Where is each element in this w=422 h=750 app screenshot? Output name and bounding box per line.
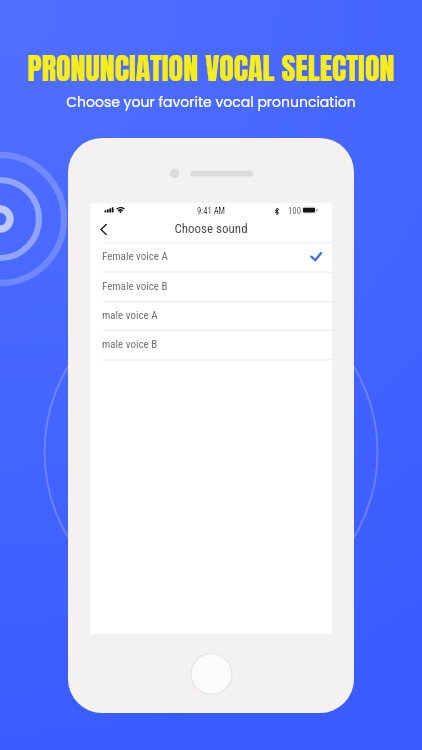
- button[interactable]: Female voice A: [90, 242, 332, 271]
- staticText: Female voice A: [102, 250, 168, 263]
- staticText: 9:41 AM: [90, 206, 332, 216]
- staticText: 100: [288, 206, 302, 216]
- staticText: PRONUNCIATION VOCAL SELECTION: [0, 46, 422, 91]
- staticText: male voice B: [102, 338, 158, 351]
- staticText: male voice A: [102, 309, 158, 322]
- staticText: Choose your favorite vocal pronunciation: [0, 92, 422, 112]
- button[interactable]: male voice B: [90, 330, 332, 359]
- button[interactable]: Female voice B: [90, 272, 332, 301]
- staticText: Choose sound: [90, 221, 332, 236]
- staticText: Female voice B: [102, 280, 168, 293]
- button[interactable]: male voice A: [90, 301, 332, 330]
- button[interactable]: Back: [95, 220, 117, 242]
